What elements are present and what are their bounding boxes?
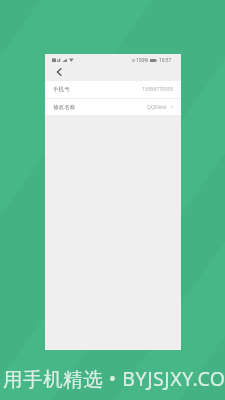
staticText: 修改名称	[53, 104, 76, 111]
staticText: 13056779553	[142, 86, 174, 93]
staticText: QQFlvixl	[147, 104, 167, 111]
button[interactable]: 修改名称	[45, 99, 181, 115]
staticText: 用手机精选 • BYJSJXY.COM	[3, 365, 225, 392]
staticText: 手机号	[53, 86, 70, 93]
button[interactable]: Back	[53, 66, 65, 78]
staticText: 10:57	[159, 57, 172, 64]
staticText: 100%	[136, 57, 149, 64]
button[interactable]: 手机号	[45, 81, 181, 98]
